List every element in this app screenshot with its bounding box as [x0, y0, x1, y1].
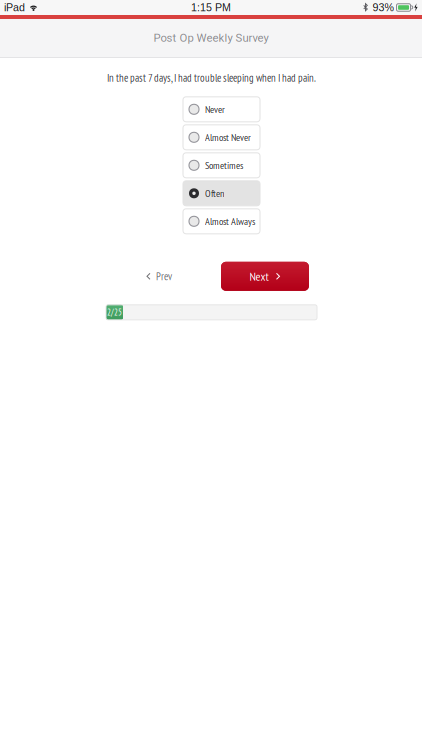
staticText: Next	[249, 268, 268, 284]
staticText: 93%	[372, 1, 393, 13]
button[interactable]: Prev	[142, 262, 176, 291]
staticText: In the past 7 days, I had trouble sleepi…	[107, 71, 316, 85]
staticText: Post Op Weekly Survey	[153, 31, 268, 45]
staticText: Often	[205, 187, 224, 200]
button[interactable]: Never	[183, 97, 260, 122]
staticText: Almost Never	[205, 131, 251, 144]
button[interactable]: Often	[183, 181, 260, 206]
staticText: 2/25	[107, 307, 122, 318]
button[interactable]: Almost Always	[183, 209, 260, 234]
button[interactable]: Sometimes	[183, 153, 260, 178]
button[interactable]: Next	[221, 262, 309, 291]
staticText: Prev	[156, 269, 172, 283]
staticText: Never	[205, 103, 225, 116]
staticText: 1:15 PM	[191, 1, 231, 13]
staticText: Almost Always	[205, 215, 255, 228]
staticText: Sometimes	[205, 159, 243, 172]
button[interactable]: Almost Never	[183, 125, 260, 150]
staticText: iPad	[4, 1, 25, 13]
